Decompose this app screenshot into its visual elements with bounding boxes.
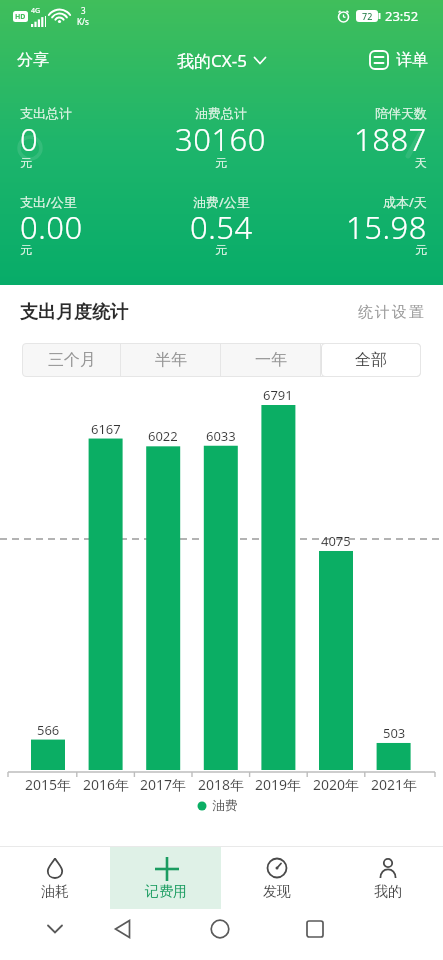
button[interactable]	[221, 909, 332, 960]
button[interactable]: 分享	[9, 42, 57, 78]
staticText: 0.54	[190, 206, 253, 248]
staticText: 油费	[212, 797, 238, 813]
button[interactable]: 发现	[221, 847, 332, 909]
staticText: 2018年	[198, 775, 245, 794]
button[interactable]	[0, 909, 110, 960]
staticText: 我的	[374, 883, 402, 901]
staticText: 15.98	[346, 206, 427, 248]
staticText: 566	[37, 721, 60, 739]
staticText: 半年	[155, 350, 187, 370]
staticText: 支出月度统计	[20, 301, 128, 324]
staticText: 油费/公里	[193, 193, 250, 211]
staticText: 记费用	[145, 883, 187, 901]
staticText: 元	[215, 242, 227, 257]
staticText: 元	[415, 242, 427, 257]
staticText: 2017年	[140, 775, 187, 794]
staticText: 0.00	[20, 206, 83, 248]
staticText: 天	[415, 155, 427, 170]
staticText: 我的CX-5	[177, 49, 247, 72]
staticText: 统计设置	[357, 303, 425, 322]
staticText: 3	[81, 5, 86, 16]
staticText: 6167	[91, 420, 121, 438]
staticText: 元	[20, 242, 32, 257]
staticText: 23:52	[385, 7, 419, 25]
staticText: 4075	[321, 532, 351, 550]
staticText: 油费总计	[195, 105, 247, 121]
button[interactable]: 记费用	[110, 847, 221, 909]
staticText: 发现	[263, 883, 291, 901]
staticText: 三个月	[48, 350, 96, 370]
staticText: K/s	[77, 16, 89, 27]
button[interactable]: 全部	[321, 343, 421, 377]
button[interactable]: 半年	[121, 343, 221, 377]
staticText: 6033	[206, 427, 236, 445]
staticText: 2019年	[255, 775, 302, 794]
staticText: 支出/公里	[20, 193, 77, 211]
staticText: 2015年	[25, 775, 72, 794]
staticText: 6022	[148, 427, 178, 445]
staticText: 分享	[17, 50, 49, 70]
staticText: 陪伴天数	[375, 105, 427, 121]
button[interactable]: 一年	[221, 343, 321, 377]
staticText: 2016年	[83, 775, 130, 794]
staticText: HD	[15, 12, 26, 22]
button[interactable]: 油耗	[0, 847, 110, 909]
staticText: 详单	[396, 50, 428, 70]
staticText: 成本/天	[383, 193, 427, 211]
staticText: 元	[215, 155, 227, 170]
button[interactable]: 我的CX-5	[173, 45, 270, 76]
staticText: 1887	[354, 118, 427, 160]
button[interactable]: 详单	[362, 43, 435, 77]
staticText: 503	[383, 724, 406, 742]
staticText: 2020年	[313, 775, 360, 794]
button[interactable]: 三个月	[22, 343, 121, 377]
staticText: 72	[362, 10, 373, 22]
staticText: 6791	[263, 386, 293, 404]
staticText: 油耗	[41, 883, 69, 901]
staticText: 全部	[355, 350, 387, 370]
staticText: 支出总计	[20, 105, 72, 121]
button[interactable]	[110, 909, 221, 960]
staticText: 一年	[255, 350, 287, 370]
staticText: 2021年	[371, 775, 418, 794]
staticText: 30160	[175, 118, 267, 160]
button[interactable]: 统计设置	[357, 303, 425, 322]
staticText: 元	[20, 155, 32, 170]
staticText: 4G	[31, 6, 41, 16]
button[interactable]: 我的	[332, 847, 443, 909]
staticText: 0	[20, 118, 39, 160]
